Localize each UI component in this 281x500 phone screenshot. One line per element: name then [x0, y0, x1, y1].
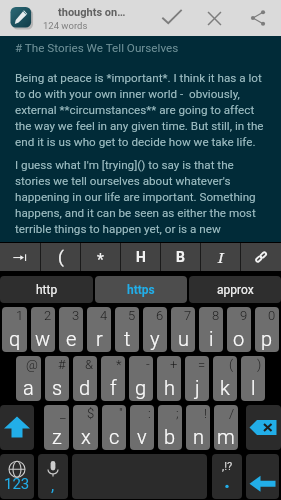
button[interactable]: App icon: [10, 6, 34, 30]
staticText: u: [178, 327, 189, 350]
staticText: I guess what I'm [trying]() to say is th…: [15, 158, 267, 236]
button[interactable]: #: [45, 356, 69, 401]
button[interactable]: :: [130, 405, 154, 450]
staticText: *: [116, 357, 122, 372]
staticText: Being at peace is *important*. I think i…: [15, 71, 267, 149]
button[interactable]: Shift: [0, 405, 34, 450]
button[interactable]: I: [201, 243, 240, 271]
staticText: ;: [176, 406, 179, 421]
button[interactable]: ;: [158, 405, 182, 450]
staticText: @: [26, 357, 38, 372]
staticText: 6: [156, 308, 164, 323]
button[interactable]: $: [73, 405, 98, 450]
staticText: v: [137, 425, 147, 448]
button[interactable]: http: [0, 276, 93, 303]
button[interactable]: =: [185, 356, 209, 401]
staticText: *: [97, 250, 104, 269]
staticText: b: [164, 425, 176, 448]
button[interactable]: &: [73, 356, 97, 401]
button[interactable]: Voice input: [38, 454, 68, 499]
staticText: f: [110, 376, 117, 399]
button[interactable]: Symbols: [0, 454, 34, 499]
staticText: 8: [212, 308, 220, 323]
staticText: approx: [217, 283, 254, 297]
staticText: ): [257, 357, 262, 372]
staticText: ,: [51, 476, 55, 495]
staticText: 124 words: [43, 20, 88, 31]
staticText: ,!?: [222, 460, 233, 473]
staticText: n: [193, 425, 204, 448]
button[interactable]: Save: [150, 0, 193, 36]
button[interactable]: *: [81, 243, 120, 271]
button[interactable]: 9: [227, 307, 251, 352]
staticText: /: [229, 406, 235, 421]
button[interactable]: 5: [115, 307, 139, 352]
staticText: k: [220, 376, 230, 399]
staticText: j: [195, 376, 200, 399]
staticText: s: [52, 376, 63, 399]
staticText: _: [60, 406, 66, 421]
staticText: w: [35, 327, 51, 350]
button[interactable]: H: [121, 243, 160, 271]
button[interactable]: link: [241, 243, 281, 271]
button[interactable]: -: [129, 356, 153, 401]
staticText: $: [87, 406, 95, 421]
staticText: !: [204, 406, 207, 421]
button[interactable]: _: [44, 405, 69, 450]
staticText: g: [135, 376, 147, 399]
staticText: 1: [16, 308, 24, 323]
button[interactable]: 7: [171, 307, 195, 352]
staticText: 123: [4, 475, 30, 493]
staticText: a: [23, 376, 34, 399]
button[interactable]: Share: [236, 0, 279, 36]
staticText: p: [261, 327, 273, 350]
button[interactable]: ): [241, 356, 265, 401]
staticText: h: [164, 376, 175, 399]
staticText: z: [52, 425, 62, 448]
button[interactable]: Discard: [193, 0, 236, 36]
button[interactable]: (: [213, 356, 237, 401]
button[interactable]: (: [41, 243, 80, 271]
staticText: +: [170, 357, 178, 372]
button[interactable]: ": [102, 405, 126, 450]
button[interactable]: 0: [255, 307, 279, 352]
staticText: o: [233, 327, 245, 350]
button[interactable]: https: [95, 276, 187, 303]
button[interactable]: 8: [199, 307, 223, 352]
staticText: 7: [184, 308, 192, 323]
staticText: y: [150, 327, 160, 350]
staticText: ": [119, 406, 123, 421]
button[interactable]: 2: [31, 307, 55, 352]
button[interactable]: 3: [59, 307, 83, 352]
staticText: H: [136, 249, 146, 265]
button[interactable]: Punctuation: [212, 454, 242, 499]
button[interactable]: Backspace: [246, 405, 281, 450]
button[interactable]: tab: [0, 243, 40, 271]
button[interactable]: 6: [143, 307, 167, 352]
staticText: (: [229, 357, 234, 372]
staticText: 5: [128, 308, 136, 323]
button[interactable]: @: [16, 356, 41, 401]
staticText: 9: [240, 308, 248, 323]
button[interactable]: 1: [2, 307, 27, 352]
button[interactable]: *: [101, 356, 125, 401]
button[interactable]: +: [157, 356, 181, 401]
button[interactable]: approx: [189, 276, 281, 303]
staticText: 4: [100, 308, 108, 323]
staticText: #: [58, 357, 66, 372]
staticText: r: [96, 327, 103, 350]
staticText: I: [218, 247, 224, 267]
staticText: e: [66, 327, 77, 350]
button[interactable]: 4: [87, 307, 111, 352]
button[interactable]: !: [186, 405, 210, 450]
button[interactable]: B: [161, 243, 200, 271]
staticText: http: [36, 283, 58, 297]
staticText: -: [146, 357, 150, 372]
button[interactable]: Enter: [246, 454, 279, 499]
staticText: # The Stories We Tell Ourselves: [15, 41, 179, 55]
staticText: :: [148, 406, 151, 421]
staticText: (: [58, 247, 64, 267]
button[interactable]: /: [214, 405, 238, 450]
staticText: B: [176, 249, 185, 265]
